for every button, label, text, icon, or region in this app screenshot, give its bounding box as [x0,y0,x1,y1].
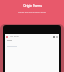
staticText: My form [10,35,19,38]
staticText: Origin Forms [23,4,42,8]
staticText: Create and share forms easily [18,11,46,14]
